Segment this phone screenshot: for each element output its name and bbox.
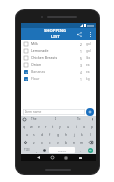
staticText: t bbox=[52, 124, 54, 129]
staticText: English bbox=[58, 149, 67, 152]
button[interactable]: Onion bbox=[21, 61, 96, 68]
staticText: p bbox=[91, 124, 94, 129]
staticText: h bbox=[65, 132, 68, 137]
staticText: g bbox=[57, 132, 60, 137]
button[interactable]: k bbox=[79, 131, 85, 137]
staticText: k bbox=[81, 132, 83, 137]
button[interactable]: o bbox=[81, 123, 87, 129]
staticText: 5 bbox=[80, 56, 82, 60]
button[interactable]: q bbox=[22, 123, 27, 129]
button[interactable]: Home bbox=[45, 154, 59, 161]
staticText: Chicken Breasts bbox=[31, 55, 58, 60]
button[interactable]: m bbox=[79, 139, 85, 145]
staticText: s bbox=[33, 132, 35, 137]
button[interactable]: i bbox=[73, 123, 79, 129]
button[interactable]: Shift bbox=[22, 139, 29, 145]
button[interactable] bbox=[41, 147, 47, 153]
button[interactable]: y bbox=[57, 123, 63, 129]
staticText: 1 bbox=[80, 49, 82, 53]
button[interactable]: Lemonade bbox=[21, 47, 96, 54]
button[interactable]: p bbox=[89, 123, 95, 129]
staticText: v bbox=[57, 140, 59, 145]
button[interactable]: Keyboard bbox=[73, 154, 87, 161]
staticText: 1 bbox=[80, 77, 82, 81]
staticText: LIST bbox=[51, 34, 60, 40]
button[interactable]: w bbox=[29, 123, 34, 129]
button[interactable]: s bbox=[31, 131, 37, 137]
staticText: ea bbox=[86, 63, 90, 67]
staticText: , bbox=[36, 148, 37, 153]
staticText: z bbox=[33, 140, 35, 145]
button[interactable]: Back bbox=[31, 154, 45, 161]
staticText: 4 bbox=[80, 70, 82, 74]
staticText: gal bbox=[86, 42, 91, 46]
staticText: To bbox=[77, 117, 81, 121]
button[interactable]: r bbox=[43, 123, 48, 129]
staticText: . bbox=[80, 148, 81, 153]
button[interactable] bbox=[23, 118, 26, 121]
button[interactable]: v bbox=[55, 139, 61, 145]
staticText: 3 bbox=[80, 63, 82, 67]
button[interactable]: Bananas bbox=[21, 68, 96, 75]
staticText: e bbox=[38, 124, 40, 129]
button[interactable]: Add item bbox=[86, 108, 94, 116]
button[interactable]: Flour bbox=[21, 75, 96, 82]
staticText: d bbox=[41, 132, 44, 137]
button[interactable]: c bbox=[47, 139, 53, 145]
button[interactable]: u bbox=[65, 123, 71, 129]
button[interactable]: x bbox=[39, 139, 45, 145]
button[interactable]: n bbox=[71, 139, 77, 145]
staticText: ?123 bbox=[24, 148, 30, 152]
button[interactable]: ?123 bbox=[22, 147, 31, 153]
button[interactable]: t bbox=[50, 123, 55, 129]
staticText: The bbox=[31, 117, 37, 121]
staticText: gal bbox=[86, 49, 91, 53]
staticText: f bbox=[49, 132, 51, 137]
button[interactable]: l bbox=[87, 131, 93, 137]
button[interactable]: Item name bbox=[23, 109, 85, 115]
staticText: Lemonade bbox=[31, 48, 49, 53]
staticText: b bbox=[65, 140, 68, 145]
staticText: lbs bbox=[86, 56, 91, 60]
button[interactable]: Enter bbox=[88, 148, 93, 153]
button[interactable]: h bbox=[63, 131, 69, 137]
button[interactable]: Recents bbox=[59, 154, 73, 161]
staticText: Milk bbox=[31, 41, 38, 46]
button[interactable]: a bbox=[24, 131, 29, 137]
button[interactable]: d bbox=[39, 131, 45, 137]
button[interactable]: f bbox=[47, 131, 53, 137]
staticText: l bbox=[90, 132, 91, 137]
staticText: j bbox=[74, 132, 75, 137]
button[interactable]: , bbox=[33, 147, 39, 153]
staticText: r bbox=[45, 124, 47, 129]
button[interactable]: z bbox=[31, 139, 37, 145]
button[interactable]: Space bbox=[49, 147, 75, 153]
staticText: kg bbox=[86, 77, 90, 81]
staticText: c bbox=[49, 140, 51, 145]
staticText: Bananas bbox=[31, 69, 46, 74]
staticText: w bbox=[30, 124, 33, 129]
staticText: i bbox=[76, 124, 77, 129]
button[interactable]: b bbox=[63, 139, 69, 145]
button[interactable]: More options bbox=[86, 30, 94, 38]
staticText: Onion bbox=[31, 62, 42, 67]
staticText: u bbox=[67, 124, 70, 129]
button[interactable]: g bbox=[55, 131, 61, 137]
staticText: I bbox=[55, 117, 57, 121]
button[interactable]: j bbox=[71, 131, 77, 137]
button[interactable]: Voice input bbox=[91, 118, 94, 121]
button[interactable]: Backspace bbox=[87, 139, 95, 145]
staticText: q bbox=[23, 124, 26, 129]
button[interactable]: . bbox=[77, 147, 83, 153]
staticText: 2 bbox=[80, 42, 82, 46]
staticText: x bbox=[41, 140, 43, 145]
button[interactable]: Chicken Breasts bbox=[21, 54, 96, 61]
staticText: n bbox=[73, 140, 76, 145]
button[interactable]: Share bbox=[75, 30, 83, 38]
staticText: Item name bbox=[25, 110, 42, 114]
button[interactable]: Milk bbox=[21, 40, 96, 47]
button[interactable]: e bbox=[36, 123, 41, 129]
staticText: o bbox=[83, 124, 86, 129]
staticText: y bbox=[59, 124, 61, 129]
staticText: m bbox=[80, 140, 84, 145]
